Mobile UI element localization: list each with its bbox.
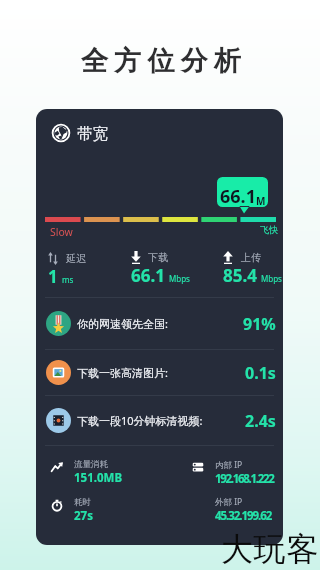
staticText: 流量消耗 [74,459,108,470]
button[interactable]: 下载一段10分钟标清视频: [36,396,283,445]
staticText: 91% [243,313,276,335]
staticText: 耗时 [74,497,91,508]
staticText: 85.4 [223,264,257,287]
staticText: 192.168.1.222 [215,471,274,487]
staticText: Slow [50,225,73,239]
staticText: 延迟 [66,252,86,265]
staticText: 内部 IP [215,459,243,471]
staticText: Mbps [169,273,190,284]
staticText: 下载 [148,251,168,264]
staticText: 0.1s [245,362,276,384]
staticText: 外部 IP [215,496,243,508]
staticText: 1 [48,265,58,288]
staticText: Mbps [261,273,282,284]
staticText: 27s [74,508,93,524]
button[interactable]: 下载一张高清图片: [36,350,283,395]
staticText: 66.1 [131,264,165,287]
button[interactable]: 你的网速领先全国: [36,298,283,349]
staticText: M [256,194,266,208]
staticText: 大玩客 [221,529,319,569]
staticText: 带宽 [77,124,108,144]
staticText: 你的网速领先全国: [77,316,243,331]
staticText: 2.4s [245,410,276,432]
staticText: 上传 [241,251,261,264]
staticText: 全方位分析 [78,44,244,78]
staticText: 45.32.199.62 [215,508,272,524]
staticText: 66.1 [220,184,256,209]
staticText: 飞快 [260,224,278,235]
staticText: 下载一段10分钟标清视频: [77,413,245,428]
staticText: 151.0MB [74,470,123,486]
staticText: ms [62,274,74,285]
staticText: 下载一张高清图片: [77,365,245,380]
